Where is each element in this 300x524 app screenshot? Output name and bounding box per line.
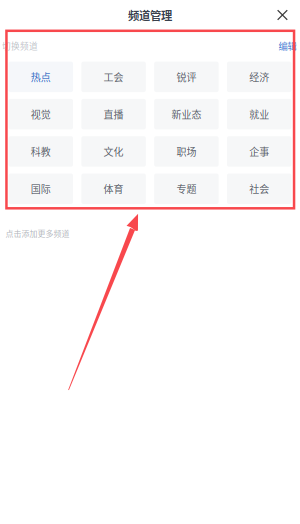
staticText: 新业态 <box>171 107 201 121</box>
staticText: 就业 <box>249 107 269 121</box>
staticText: 文化 <box>104 144 124 159</box>
button[interactable]: 工会 <box>81 62 146 92</box>
staticText: 工会 <box>104 70 124 84</box>
button[interactable]: 直播 <box>81 99 146 129</box>
button[interactable]: 新业态 <box>154 99 219 129</box>
button[interactable]: 职场 <box>154 136 219 167</box>
button[interactable]: 锐评 <box>154 62 219 92</box>
button[interactable]: 社会 <box>227 173 291 204</box>
staticText: 热点 <box>31 70 51 84</box>
staticText: 切换频道 <box>2 39 38 52</box>
staticText: 职场 <box>176 144 196 159</box>
button[interactable]: 热点 <box>9 62 73 92</box>
staticText: 社会 <box>249 181 269 196</box>
button[interactable]: 就业 <box>227 99 291 129</box>
button[interactable]: 视觉 <box>9 99 73 129</box>
button[interactable]: 文化 <box>81 136 146 167</box>
button[interactable]: Close <box>269 0 295 30</box>
button[interactable]: 国际 <box>9 173 73 204</box>
staticText: 体育 <box>104 181 124 196</box>
button[interactable]: 科教 <box>9 136 73 167</box>
staticText: 经济 <box>249 70 269 84</box>
staticText: 科教 <box>31 144 51 159</box>
staticText: 点击添加更多频道 <box>6 227 70 239</box>
button[interactable]: 经济 <box>227 62 291 92</box>
staticText: 企事 <box>249 144 269 159</box>
staticText: 专题 <box>176 181 196 196</box>
button[interactable]: 专题 <box>154 173 219 204</box>
button[interactable]: 体育 <box>81 173 146 204</box>
staticText: 频道管理 <box>128 7 172 23</box>
button[interactable]: 企事 <box>227 136 291 167</box>
staticText: 锐评 <box>176 70 196 84</box>
staticText: 国际 <box>31 181 51 196</box>
staticText: 直播 <box>104 107 124 121</box>
staticText: 编辑 <box>278 39 296 52</box>
button[interactable]: 编辑 <box>278 39 300 52</box>
staticText: 视觉 <box>31 107 51 121</box>
